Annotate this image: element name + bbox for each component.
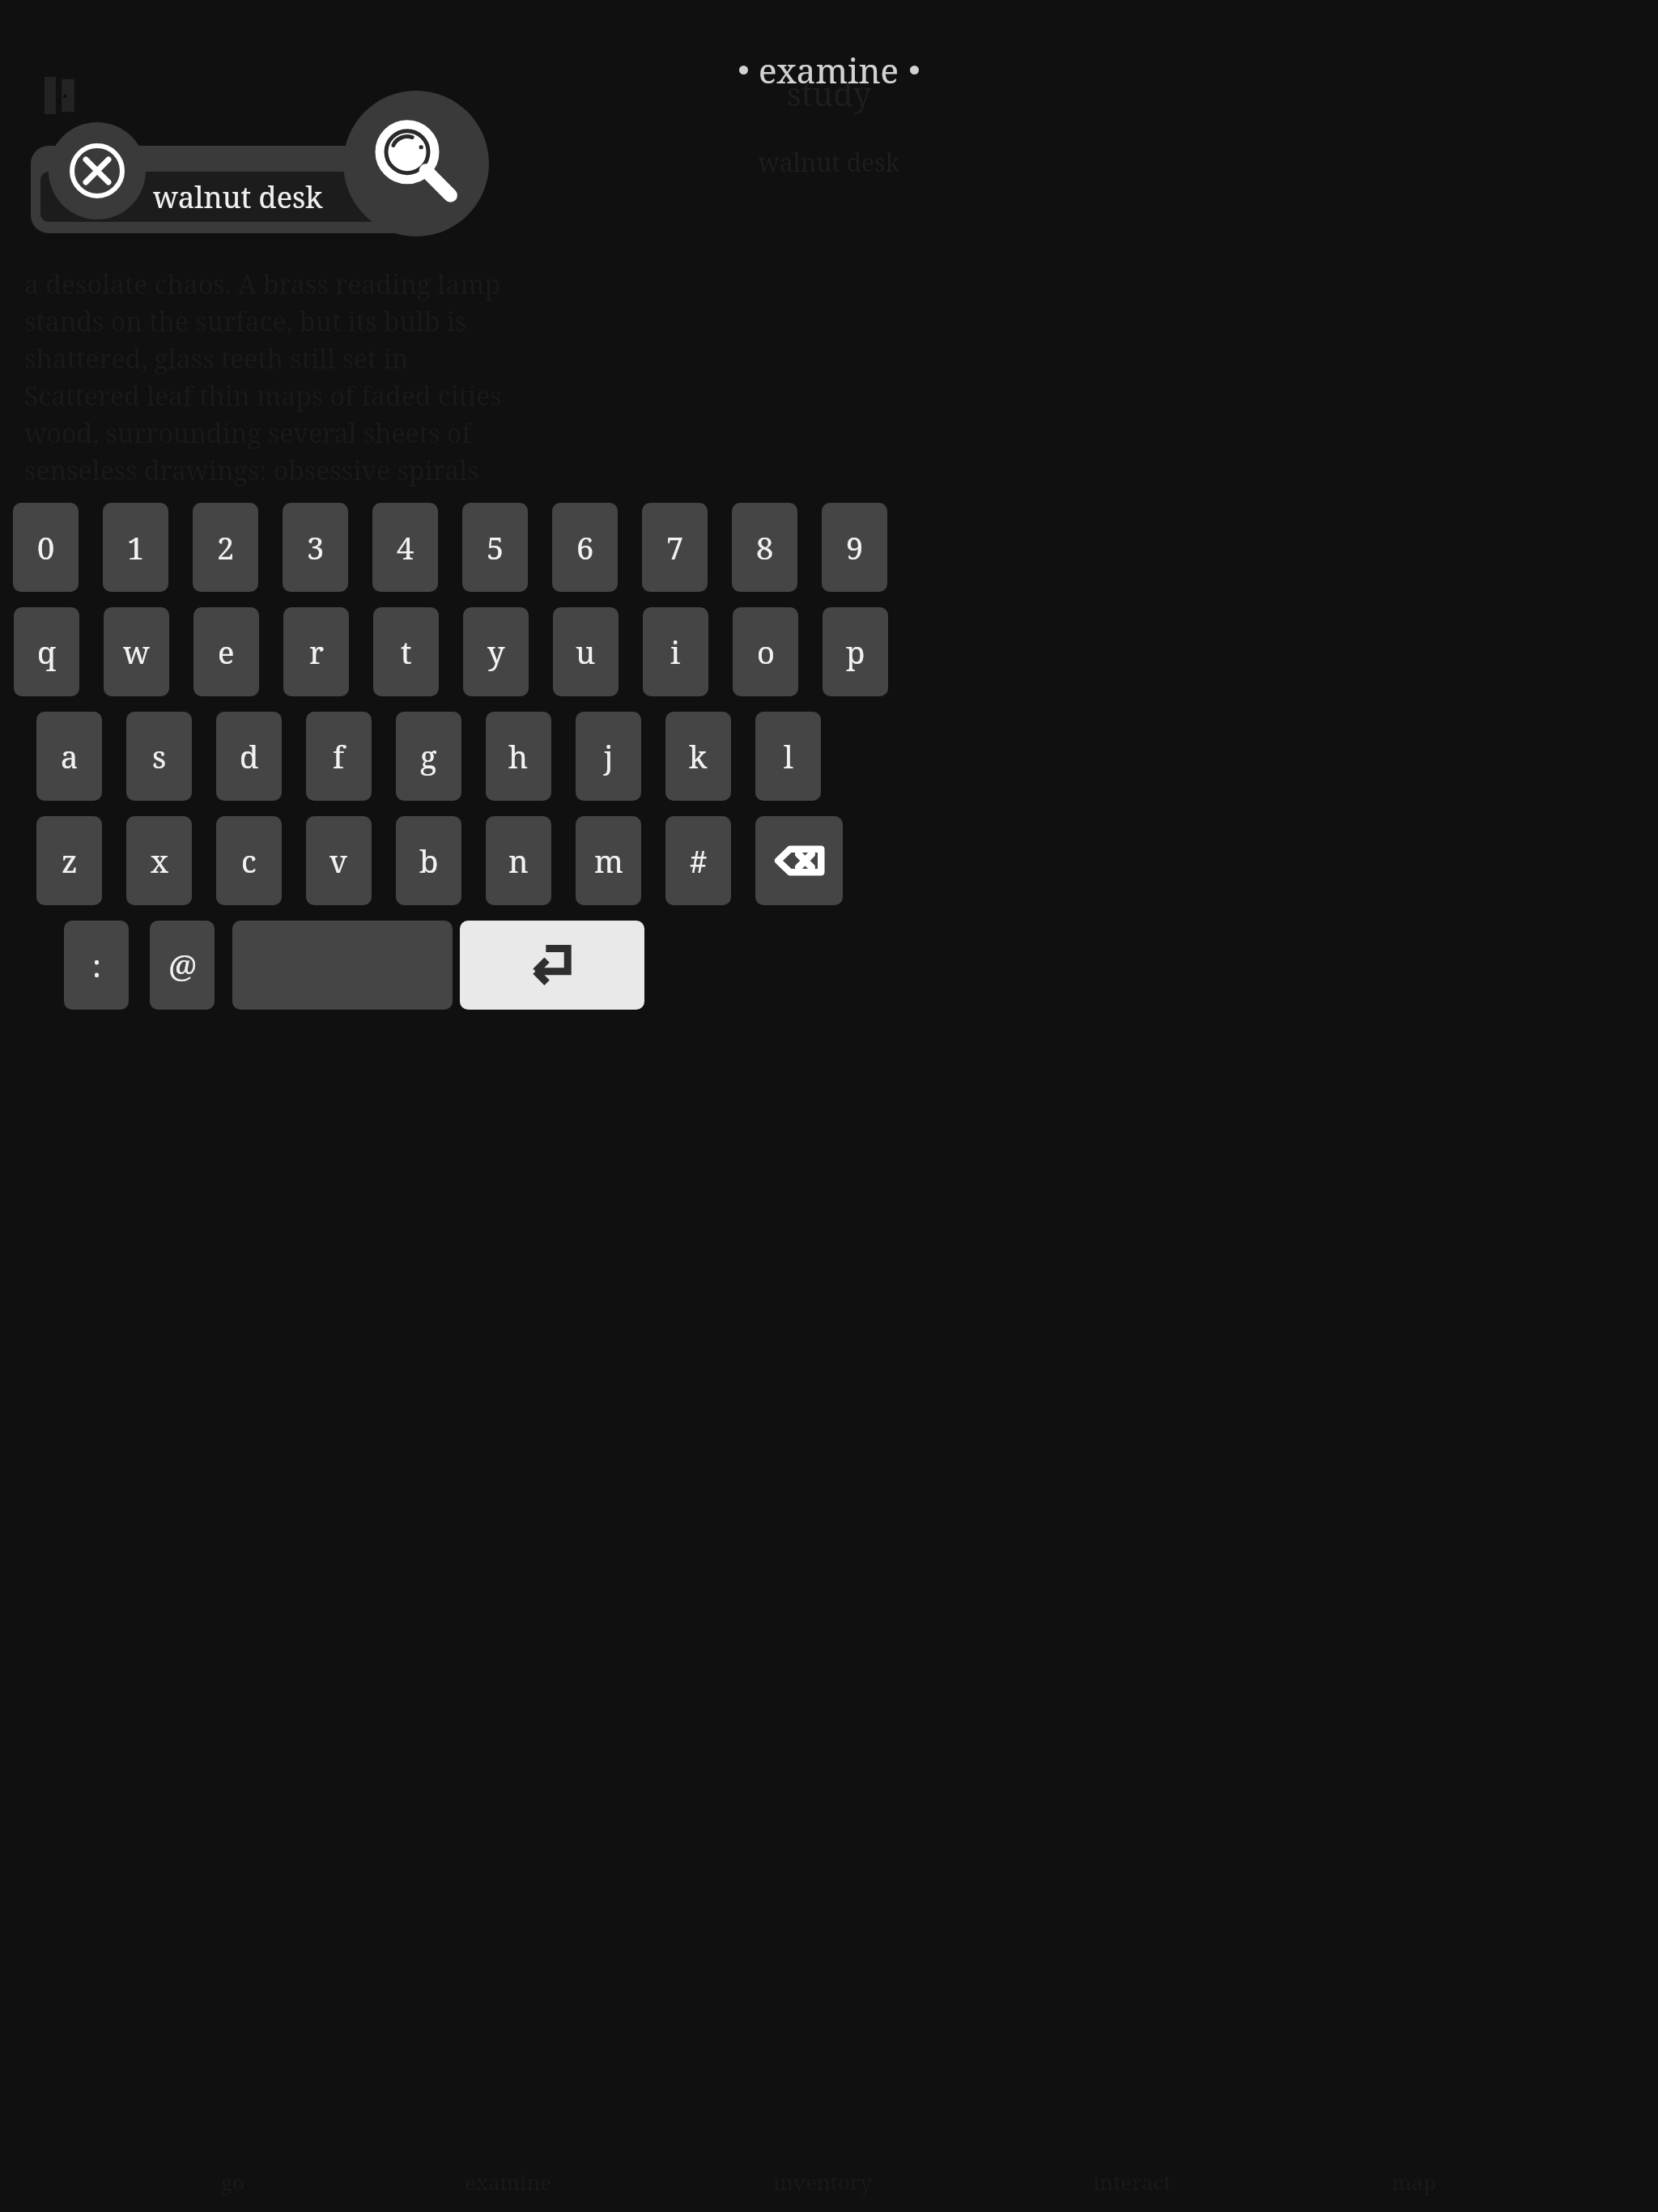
- staticText: c: [241, 840, 257, 882]
- staticText: g: [420, 735, 437, 777]
- staticText: 2: [217, 526, 235, 568]
- button[interactable]: j: [576, 712, 641, 801]
- button[interactable]: v: [306, 816, 372, 905]
- button[interactable]: n: [486, 816, 551, 905]
- staticText: o: [757, 631, 775, 673]
- button[interactable]: e: [193, 607, 259, 696]
- staticText: v: [329, 840, 348, 882]
- staticText: i: [670, 631, 681, 673]
- button[interactable]: o: [733, 607, 798, 696]
- button[interactable]: g: [396, 712, 461, 801]
- staticText: 1: [127, 526, 145, 568]
- staticText: y: [487, 631, 505, 673]
- button[interactable]: 6: [552, 503, 618, 592]
- staticText: go: [221, 2167, 244, 2196]
- button[interactable]: x: [126, 816, 192, 905]
- button[interactable]: p: [823, 607, 888, 696]
- button[interactable]: t: [373, 607, 439, 696]
- staticText: p: [846, 631, 865, 673]
- staticText: q: [37, 631, 57, 673]
- staticText: walnut desk: [153, 177, 323, 217]
- button[interactable]: f: [306, 712, 372, 801]
- button[interactable]: 4: [372, 503, 438, 592]
- staticText: h: [508, 735, 529, 777]
- button[interactable]: m: [576, 816, 641, 905]
- staticText: a: [61, 735, 79, 777]
- staticText: study: [24, 71, 1634, 115]
- button[interactable]: s: [126, 712, 192, 801]
- button[interactable]: Close: [49, 122, 146, 219]
- staticText: r: [309, 631, 324, 673]
- staticText: walnut desk: [24, 146, 1634, 179]
- button[interactable]: Backspace: [755, 816, 843, 905]
- button[interactable]: i: [643, 607, 708, 696]
- staticText: examine: [759, 47, 899, 93]
- button[interactable]: d: [216, 712, 282, 801]
- staticText: 9: [846, 526, 864, 568]
- button[interactable]: Enter: [460, 921, 644, 1010]
- staticText: m: [594, 840, 623, 882]
- staticText: 7: [666, 526, 684, 568]
- staticText: j: [604, 735, 614, 777]
- staticText: 0: [37, 526, 55, 568]
- staticText: n: [508, 840, 529, 882]
- staticText: d: [240, 735, 259, 777]
- staticText: @: [168, 944, 197, 986]
- staticText: u: [576, 631, 596, 673]
- staticText: x: [151, 840, 168, 882]
- button[interactable]: :: [64, 921, 129, 1010]
- staticText: b: [419, 840, 439, 882]
- button[interactable]: [232, 921, 453, 1010]
- button[interactable]: r: [283, 607, 349, 696]
- button[interactable]: Examine: [343, 91, 489, 236]
- button[interactable]: k: [665, 712, 731, 801]
- button[interactable]: a: [36, 712, 102, 801]
- staticText: t: [401, 631, 412, 673]
- staticText: 8: [756, 526, 774, 568]
- button[interactable]: 0: [13, 503, 79, 592]
- staticText: #: [690, 840, 708, 882]
- button[interactable]: 8: [732, 503, 797, 592]
- staticText: 5: [487, 526, 504, 568]
- button[interactable]: q: [14, 607, 79, 696]
- button[interactable]: b: [396, 816, 461, 905]
- staticText: :: [92, 944, 101, 986]
- staticText: 6: [576, 526, 594, 568]
- staticText: e: [218, 631, 235, 673]
- button[interactable]: #: [665, 816, 731, 905]
- button[interactable]: c: [216, 816, 282, 905]
- button[interactable]: 2: [193, 503, 258, 592]
- button[interactable]: 9: [822, 503, 887, 592]
- staticText: 3: [307, 526, 325, 568]
- button[interactable]: @: [150, 921, 215, 1010]
- staticText: z: [62, 840, 78, 882]
- button[interactable]: u: [553, 607, 619, 696]
- button[interactable]: h: [486, 712, 551, 801]
- staticText: f: [333, 735, 345, 777]
- button[interactable]: l: [755, 712, 821, 801]
- button[interactable]: 7: [642, 503, 708, 592]
- button[interactable]: 5: [462, 503, 528, 592]
- staticText: s: [152, 735, 167, 777]
- staticText: l: [784, 735, 793, 777]
- button[interactable]: 3: [283, 503, 348, 592]
- button[interactable]: w: [104, 607, 169, 696]
- button[interactable]: y: [463, 607, 529, 696]
- button[interactable]: walnut desk: [40, 172, 436, 222]
- staticText: w: [123, 631, 150, 673]
- staticText: 4: [397, 526, 414, 568]
- button[interactable]: 1: [103, 503, 168, 592]
- button[interactable]: z: [36, 816, 102, 905]
- staticText: k: [689, 735, 708, 777]
